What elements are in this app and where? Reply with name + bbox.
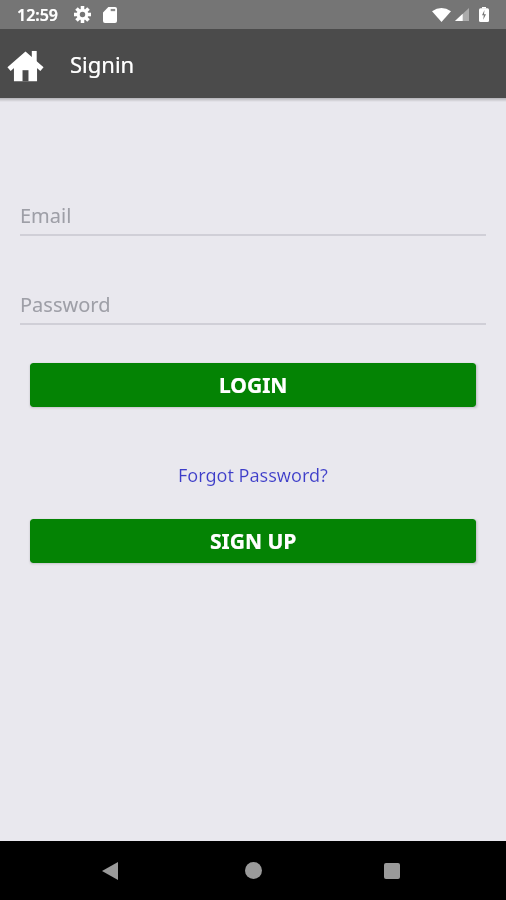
staticText: 12:59	[17, 4, 59, 26]
button[interactable]	[8, 44, 43, 84]
button[interactable]: SIGN UP	[30, 519, 476, 563]
staticText: LOGIN	[219, 371, 288, 400]
button[interactable]	[357, 841, 427, 900]
button[interactable]: Forgot Password?	[178, 463, 328, 488]
button[interactable]: Password	[20, 291, 486, 325]
staticText: Forgot Password?	[178, 463, 328, 488]
button[interactable]	[218, 841, 288, 900]
button[interactable]: Email	[20, 202, 486, 236]
staticText: SIGN UP	[210, 527, 297, 556]
button[interactable]	[75, 841, 145, 900]
button[interactable]: LOGIN	[30, 363, 476, 407]
staticText: Email	[20, 202, 72, 229]
staticText: Password	[20, 291, 111, 318]
staticText: Signin	[70, 49, 135, 79]
